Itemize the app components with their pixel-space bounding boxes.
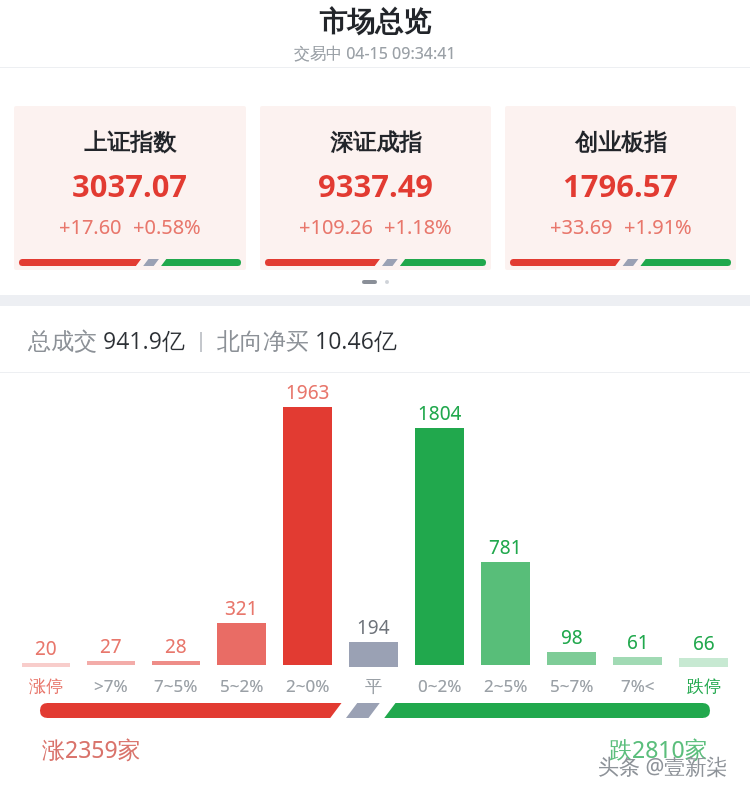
staticText: 总成交 (28, 324, 103, 355)
staticText: 1796.57 (563, 164, 679, 206)
staticText: 20 (35, 635, 57, 661)
staticText: 上证指数 (84, 128, 176, 157)
staticText: +33.69 (550, 213, 613, 240)
staticText: 194 (357, 614, 390, 640)
staticText: 0~2% (418, 674, 462, 697)
staticText: +17.60 (59, 213, 122, 240)
staticText: >7% (94, 674, 128, 697)
staticText: 1963 (286, 379, 330, 405)
staticText: 61 (627, 629, 649, 655)
staticText: 781 (489, 534, 522, 560)
staticText: 交易中 04-15 09:34:41 (294, 42, 456, 64)
button[interactable]: 66 (679, 630, 728, 703)
button[interactable]: 总成交 (0, 306, 750, 372)
staticText: +1.91% (624, 213, 692, 240)
staticText: 321 (225, 595, 258, 621)
staticText: 10.46亿 (315, 324, 397, 355)
staticText: 3037.07 (72, 164, 188, 206)
staticText: 创业板指 (575, 128, 667, 157)
staticText: 7~5% (154, 674, 198, 697)
button[interactable]: 61 (613, 629, 662, 703)
staticText: 27 (100, 633, 122, 659)
button[interactable]: 28 (152, 633, 200, 703)
staticText: +0.58% (133, 213, 201, 240)
button[interactable]: 创业板指 (505, 106, 736, 270)
staticText: 9337.49 (318, 164, 434, 206)
staticText: 市场总览 (319, 4, 431, 39)
staticText: 头条 @壹新柒 (598, 752, 728, 781)
staticText: 跌停 (687, 676, 721, 697)
button[interactable]: 深证成指 (260, 106, 491, 270)
staticText: 5~7% (550, 674, 594, 697)
staticText: 涨停 (29, 676, 63, 697)
staticText: 98 (561, 624, 583, 650)
staticText: 2~0% (286, 674, 330, 697)
staticText: 941.9亿 (103, 324, 185, 355)
staticText: +109.26 (299, 213, 373, 240)
staticText: +1.18% (384, 213, 452, 240)
staticText: 深证成指 (330, 128, 422, 157)
button[interactable]: 27 (87, 633, 135, 703)
staticText: 5~2% (220, 674, 264, 697)
staticText: 7%< (621, 674, 655, 697)
staticText: 北向净买 (217, 324, 315, 355)
staticText: 跌2810家 (609, 733, 708, 764)
button[interactable]: 781 (481, 534, 530, 703)
button[interactable]: 1963 (283, 379, 332, 703)
button[interactable]: 98 (547, 624, 596, 703)
staticText: 1804 (418, 400, 462, 426)
button[interactable]: 321 (217, 595, 266, 703)
staticText: | (185, 326, 217, 353)
button[interactable]: 194 (349, 614, 398, 703)
button[interactable]: 20 (22, 635, 70, 703)
staticText: 涨2359家 (42, 733, 141, 764)
staticText: 平 (365, 676, 382, 697)
staticText: 66 (693, 630, 715, 656)
other: Page indicator (0, 276, 750, 288)
staticText: 2~5% (484, 674, 528, 697)
button[interactable]: 1804 (415, 400, 464, 703)
button[interactable]: 上证指数 (14, 106, 246, 270)
staticText: 28 (165, 633, 187, 659)
